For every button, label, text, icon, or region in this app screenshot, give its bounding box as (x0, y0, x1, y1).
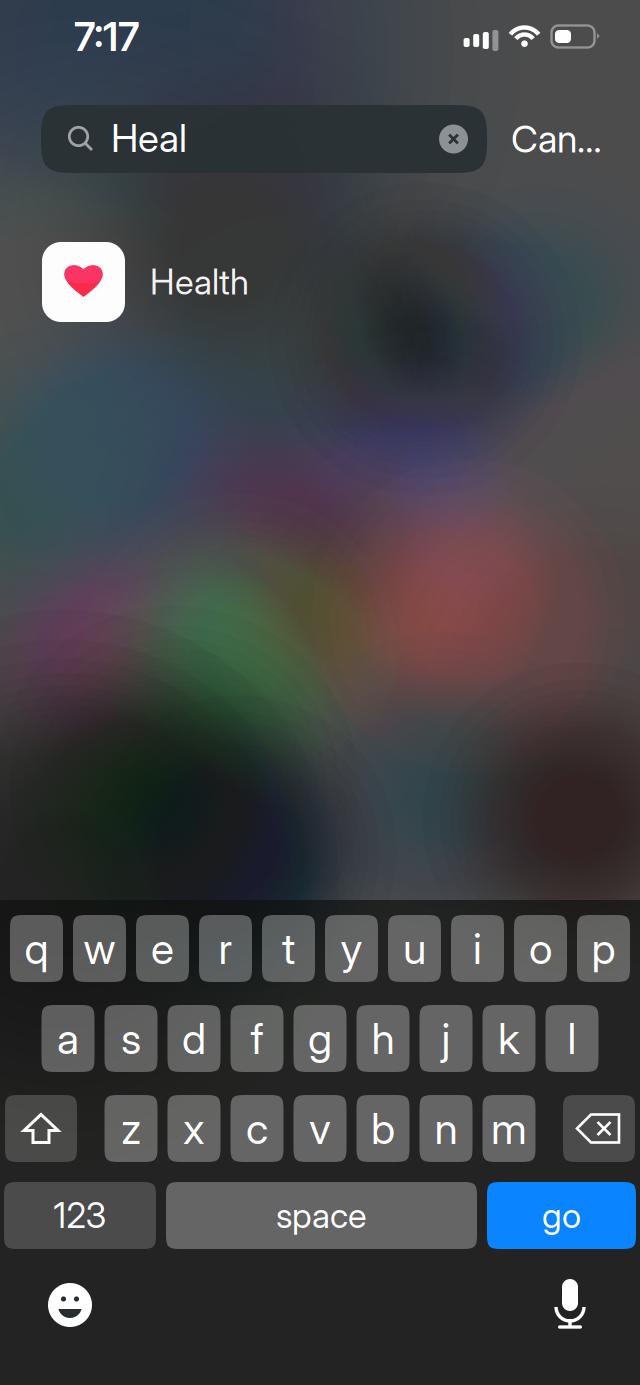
button[interactable]: b (356, 1095, 409, 1162)
staticText: Cancel (511, 116, 621, 162)
staticText: Heal (111, 115, 187, 161)
button[interactable]: l (545, 1005, 598, 1072)
button[interactable]: Delete (563, 1095, 635, 1162)
staticText: e (151, 923, 174, 974)
button[interactable]: Heal (41, 105, 487, 173)
staticText: p (591, 923, 615, 974)
button[interactable]: Emoji (40, 1275, 100, 1335)
button[interactable]: z (104, 1095, 157, 1162)
button[interactable]: go (487, 1182, 636, 1249)
staticText: f (250, 1013, 263, 1064)
button[interactable]: 123 (4, 1182, 156, 1249)
button[interactable]: v (293, 1095, 346, 1162)
staticText: o (529, 923, 552, 974)
button[interactable]: Shift (5, 1095, 77, 1162)
staticText: z (121, 1103, 141, 1154)
button[interactable]: q (10, 915, 63, 982)
button[interactable]: i (451, 915, 504, 982)
staticText: s (121, 1013, 141, 1064)
staticText: i (473, 923, 482, 974)
staticText: m (491, 1103, 527, 1154)
button[interactable]: a (41, 1005, 94, 1072)
button[interactable]: d (167, 1005, 220, 1072)
button[interactable]: s (104, 1005, 157, 1072)
staticText: d (182, 1013, 206, 1064)
button[interactable]: Dictation (540, 1275, 600, 1335)
button[interactable]: t (262, 915, 315, 982)
button[interactable]: m (482, 1095, 535, 1162)
staticText: a (57, 1013, 79, 1064)
button[interactable]: j (419, 1005, 472, 1072)
staticText: 7:17 (74, 12, 140, 61)
button[interactable]: Cancel (511, 105, 621, 173)
button[interactable]: g (293, 1005, 346, 1072)
button[interactable]: h (356, 1005, 409, 1072)
staticText: b (371, 1103, 395, 1154)
staticText: space (276, 1194, 367, 1236)
staticText: v (309, 1103, 331, 1154)
button[interactable]: u (388, 915, 441, 982)
button[interactable]: Health (0, 223, 640, 341)
staticText: r (218, 923, 232, 974)
staticText: w (83, 923, 115, 974)
staticText: y (340, 923, 362, 974)
staticText: j (441, 1013, 450, 1064)
staticText: h (371, 1013, 394, 1064)
staticText: q (24, 923, 48, 974)
staticText: go (542, 1194, 581, 1236)
staticText: 123 (53, 1194, 106, 1236)
staticText: t (282, 923, 295, 974)
staticText: x (183, 1103, 205, 1154)
button[interactable]: space (166, 1182, 477, 1249)
staticText: c (246, 1103, 268, 1154)
staticText: g (308, 1013, 332, 1064)
button[interactable]: w (73, 915, 126, 982)
button[interactable]: c (230, 1095, 283, 1162)
button[interactable]: r (199, 915, 252, 982)
button[interactable]: y (325, 915, 378, 982)
staticText: u (403, 923, 426, 974)
staticText: n (434, 1103, 457, 1154)
button[interactable]: n (419, 1095, 472, 1162)
staticText: k (498, 1013, 520, 1064)
button[interactable]: p (577, 915, 630, 982)
button[interactable]: e (136, 915, 189, 982)
button[interactable]: f (230, 1005, 283, 1072)
staticText: l (567, 1013, 576, 1064)
button[interactable]: k (482, 1005, 535, 1072)
button[interactable]: o (514, 915, 567, 982)
staticText: Health (150, 261, 249, 303)
button[interactable]: x (167, 1095, 220, 1162)
